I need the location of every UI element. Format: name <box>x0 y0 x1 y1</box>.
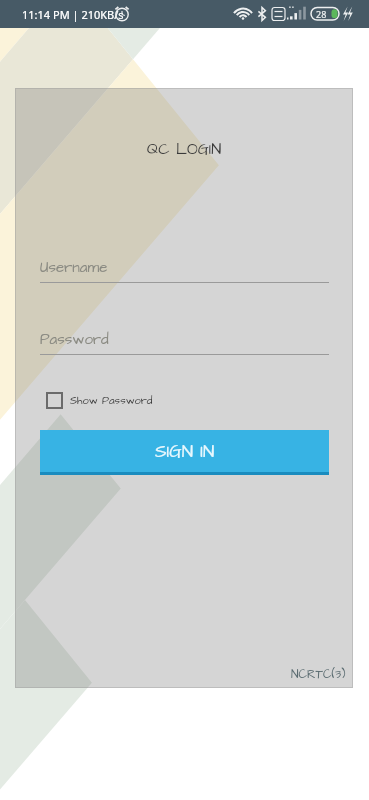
staticText: QC LOGIN <box>15 138 353 160</box>
staticText: Password <box>40 329 109 350</box>
staticText: SIGN IN <box>155 439 215 464</box>
staticText: Show Password <box>70 393 153 408</box>
staticText: NCRTC(3) <box>291 666 346 683</box>
button[interactable]: SIGN IN <box>40 430 329 475</box>
staticText: Username <box>40 257 108 278</box>
staticText: 28 <box>316 8 327 20</box>
staticText: 11:14 PM | 210KB/s <box>22 7 124 22</box>
button[interactable]: Show Password <box>46 392 153 409</box>
